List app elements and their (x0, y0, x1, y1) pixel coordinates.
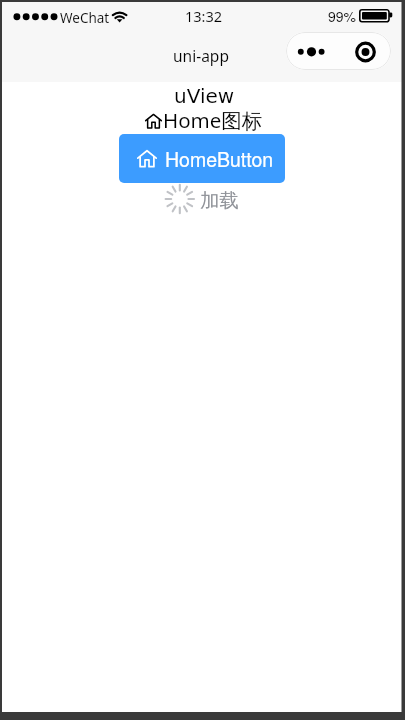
staticText: uView (174, 84, 235, 107)
staticText: 加载 (200, 188, 239, 213)
button[interactable]: More options and close mini program (286, 32, 391, 70)
staticText: 13:32 (185, 6, 223, 26)
staticText: HomeButton (165, 145, 274, 173)
button[interactable]: uni-app (173, 45, 229, 66)
button[interactable]: HomeButton (119, 134, 285, 183)
staticText: WeChat (60, 9, 110, 27)
staticText: 99% (328, 6, 357, 26)
staticText: Home图标 (163, 106, 263, 134)
